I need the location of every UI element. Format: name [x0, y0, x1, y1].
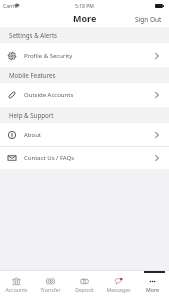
button[interactable]: Deposit — [67, 270, 101, 300]
staticText: Sign Out — [135, 15, 162, 24]
button[interactable]: Accounts — [0, 270, 33, 300]
staticText: More — [146, 286, 159, 293]
staticText: Mobile Features — [9, 71, 56, 79]
staticText: 5:18 PM — [75, 3, 94, 10]
button[interactable]: Transfer — [33, 270, 67, 300]
button[interactable]: More — [135, 270, 169, 300]
staticText: Accounts — [5, 286, 28, 293]
button[interactable]: Profile & Security — [0, 43, 169, 68]
button[interactable]: Sign Out — [128, 13, 169, 26]
staticText: Profile & Security — [24, 52, 73, 60]
button[interactable]: Messages — [101, 270, 135, 300]
staticText: Carrier — [3, 3, 20, 10]
button[interactable]: About — [0, 123, 169, 147]
staticText: Outside Accounts — [24, 91, 74, 99]
staticText: Deposit — [75, 286, 94, 293]
staticText: Help & Support — [9, 111, 54, 119]
staticText: About — [24, 131, 42, 139]
button[interactable]: Contact Us / FAQs — [0, 147, 169, 169]
button[interactable]: Outside Accounts — [0, 83, 169, 107]
staticText: Contact Us / FAQs — [24, 154, 75, 162]
staticText: Transfer — [40, 286, 61, 293]
staticText: More — [73, 12, 97, 24]
staticText: Messages — [106, 286, 131, 293]
staticText: Settings & Alerts — [9, 31, 58, 39]
